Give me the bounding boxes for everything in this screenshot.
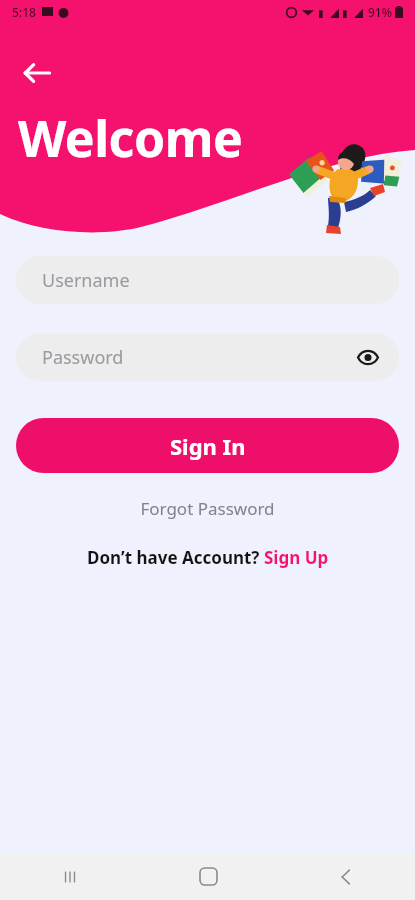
staticText: Forgot Password (140, 497, 275, 520)
staticText: Don’t have Account? (87, 546, 264, 569)
button[interactable]: Back (277, 853, 415, 900)
staticText: Password (42, 345, 124, 370)
staticText: 5:18 (12, 4, 36, 20)
button[interactable]: Username (16, 256, 399, 304)
button[interactable]: Home (139, 853, 277, 900)
button[interactable]: Show password (351, 340, 385, 374)
staticText: Sign Up (264, 546, 329, 569)
button[interactable]: Back (16, 52, 58, 94)
button[interactable]: Sign In (16, 418, 399, 473)
button[interactable]: Password (16, 333, 399, 381)
button[interactable]: Forgot Password (130, 493, 285, 524)
staticText: Username (42, 268, 130, 293)
button[interactable]: Sign Up (264, 546, 329, 569)
staticText: 91% (368, 4, 392, 20)
button[interactable]: Recent apps (0, 853, 139, 900)
staticText: Welcome (18, 104, 243, 172)
staticText: Sign In (170, 431, 246, 461)
